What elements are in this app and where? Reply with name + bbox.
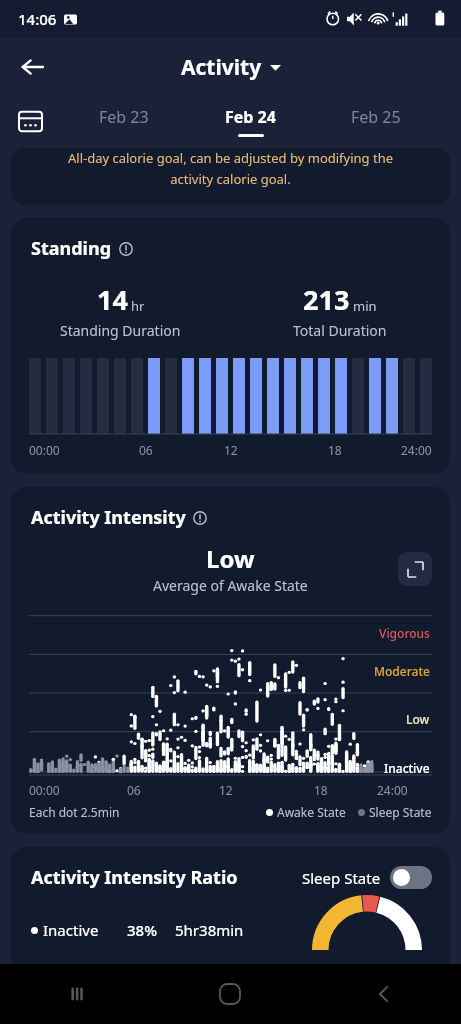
staticText: Average of Awake State	[153, 576, 308, 595]
staticText: min	[353, 297, 377, 315]
staticText: 12	[224, 442, 238, 458]
staticText: Vigorous	[379, 625, 430, 641]
staticText: Standing	[31, 236, 112, 261]
other: Info	[193, 511, 207, 525]
button[interactable]: Feb 25	[313, 96, 439, 146]
staticText: 24:00	[401, 442, 432, 458]
staticText: 5hr38min	[175, 920, 244, 940]
staticText: Sleep State	[302, 868, 381, 888]
button[interactable]: Activity Intensity Ratio	[11, 847, 450, 980]
button[interactable]: Sleep State toggle	[390, 866, 432, 889]
button[interactable]: Recent apps	[0, 964, 153, 1024]
staticText: Moderate	[374, 663, 430, 679]
staticText: Activity Intensity	[31, 505, 186, 530]
button[interactable]: Standing	[11, 218, 450, 474]
button[interactable]: Home	[153, 964, 307, 1024]
staticText: Each dot 2.5min	[29, 804, 120, 820]
button[interactable]: Back	[307, 964, 461, 1024]
staticText: 06	[139, 442, 153, 458]
staticText: 18	[314, 782, 328, 798]
staticText: Feb 24	[225, 106, 276, 128]
button[interactable]: Expand	[398, 552, 432, 586]
staticText: 213	[303, 281, 350, 318]
staticText: Inactive	[384, 760, 430, 776]
staticText: Low	[206, 542, 255, 575]
button[interactable]: Feb 24	[187, 96, 313, 146]
button[interactable]: All-day calorie goal, can be adjusted by…	[11, 148, 450, 205]
staticText: Sleep State	[369, 804, 432, 820]
staticText: 12	[219, 782, 233, 798]
staticText: Standing Duration	[60, 321, 181, 340]
staticText: 38%	[127, 920, 157, 940]
staticText: 14:06	[18, 9, 57, 29]
staticText: 00:00	[29, 442, 60, 458]
staticText: Feb 25	[351, 106, 401, 128]
staticText: Activity	[181, 53, 262, 82]
staticText: 24:00	[377, 782, 408, 798]
staticText: Awake State	[277, 804, 346, 820]
staticText: 14	[97, 281, 128, 318]
staticText: Low	[406, 711, 430, 727]
button[interactable]: Feb 23	[60, 96, 187, 146]
staticText: 00:00	[29, 782, 60, 798]
staticText: Inactive	[43, 920, 99, 940]
other: Info	[119, 242, 133, 256]
button[interactable]: Back	[10, 45, 54, 89]
staticText: Total Duration	[293, 321, 387, 340]
button[interactable]: Activity Intensity	[11, 487, 450, 834]
button[interactable]: Calendar	[0, 96, 60, 146]
staticText: All-day calorie goal, can be adjusted by…	[25, 149, 436, 167]
staticText: hr	[131, 297, 145, 315]
staticText: 06	[127, 782, 141, 798]
staticText: 18	[328, 442, 342, 458]
staticText: Activity Intensity Ratio	[31, 865, 238, 890]
staticText: activity calorie goal.	[25, 170, 436, 188]
button[interactable]: Activity	[175, 49, 287, 86]
staticText: Feb 23	[99, 106, 149, 128]
